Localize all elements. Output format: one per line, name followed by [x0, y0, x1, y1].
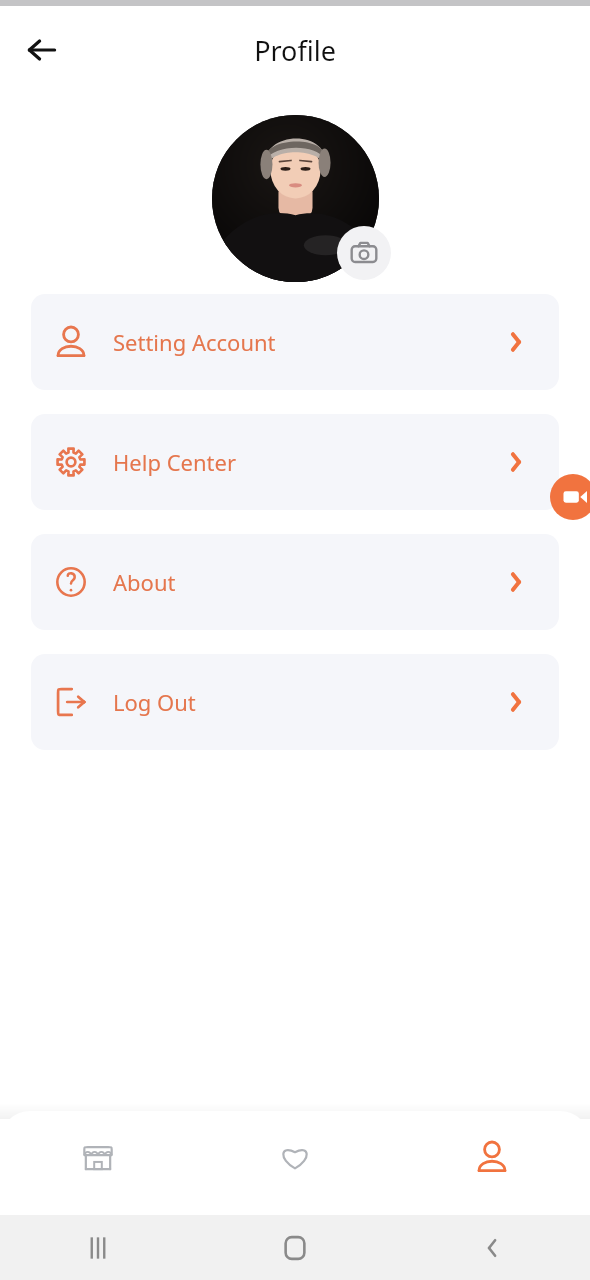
staticText: Profile: [254, 32, 336, 69]
button[interactable]: Back: [14, 22, 70, 78]
staticText: About: [113, 567, 176, 597]
button[interactable]: Log Out: [31, 654, 559, 750]
button[interactable]: About: [31, 534, 559, 630]
staticText: Log Out: [113, 687, 196, 717]
button[interactable]: Video: [550, 474, 590, 520]
button[interactable]: [212, 115, 379, 282]
button[interactable]: Help Center: [31, 414, 559, 510]
button[interactable]: Setting Account: [31, 294, 559, 390]
button[interactable]: Profile: [393, 1111, 590, 1215]
button[interactable]: Favorites: [196, 1111, 393, 1215]
staticText: Setting Account: [113, 327, 276, 357]
staticText: Help Center: [113, 447, 236, 477]
button[interactable]: Shop: [0, 1111, 196, 1215]
button[interactable]: Change photo: [337, 226, 391, 280]
